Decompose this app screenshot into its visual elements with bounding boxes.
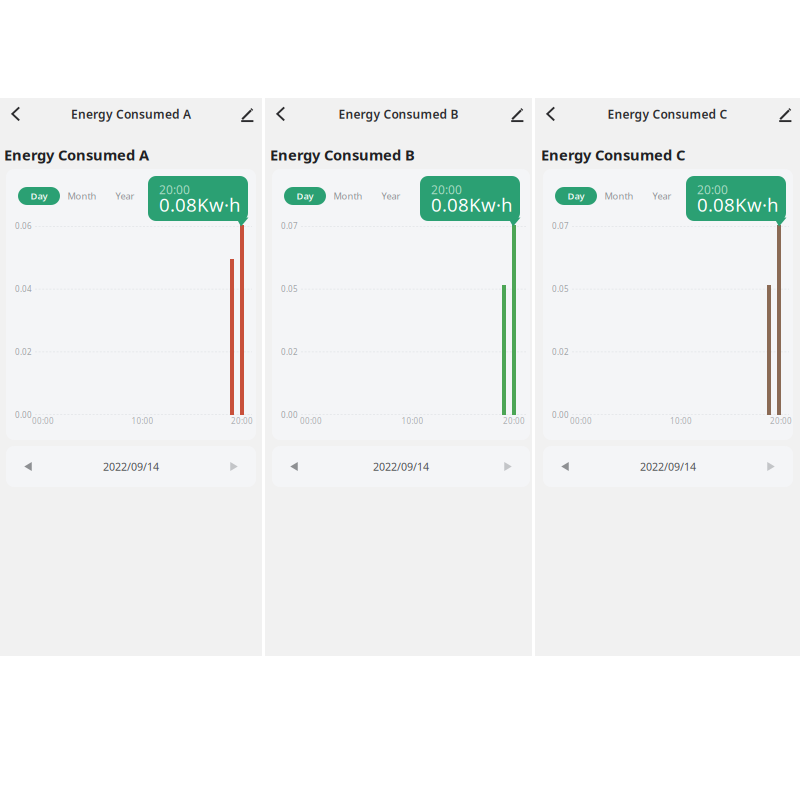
staticText: 0.00 bbox=[281, 410, 298, 420]
button[interactable]: Day bbox=[555, 187, 597, 205]
staticText: Month bbox=[67, 190, 96, 202]
button[interactable]: Edit bbox=[769, 101, 800, 127]
button[interactable]: Year bbox=[641, 187, 683, 205]
staticText: 0.07 bbox=[281, 221, 298, 231]
staticText: Day bbox=[30, 190, 47, 202]
staticText: 00:00 bbox=[570, 416, 592, 426]
staticText: 0.02 bbox=[15, 347, 32, 357]
staticText: 00:00 bbox=[300, 416, 322, 426]
staticText: 0.05 bbox=[552, 284, 569, 294]
button[interactable]: Next day bbox=[496, 446, 520, 487]
staticText: 0.08Kw·h bbox=[159, 192, 241, 217]
staticText: 0.00 bbox=[552, 410, 569, 420]
button[interactable]: Edit bbox=[501, 101, 532, 127]
staticText: 0.08Kw·h bbox=[697, 192, 779, 217]
staticText: 0.02 bbox=[281, 347, 298, 357]
staticText: Year bbox=[381, 190, 400, 202]
staticText: 20:00 bbox=[159, 181, 190, 197]
button[interactable]: Year bbox=[370, 187, 412, 205]
button[interactable]: Back bbox=[535, 100, 565, 127]
button[interactable]: Edit bbox=[231, 101, 262, 127]
staticText: 20:00 bbox=[431, 181, 462, 197]
button[interactable]: Previous day bbox=[553, 446, 577, 487]
staticText: 2022/09/14 bbox=[640, 459, 696, 474]
staticText: 20:00 bbox=[503, 416, 525, 426]
button[interactable]: Day bbox=[18, 187, 60, 205]
staticText: 0.08Kw·h bbox=[431, 192, 513, 217]
staticText: 0.06 bbox=[15, 221, 32, 231]
button[interactable]: Back bbox=[265, 100, 295, 127]
button[interactable]: Next day bbox=[759, 446, 783, 487]
staticText: Month bbox=[333, 190, 362, 202]
staticText: Year bbox=[115, 190, 134, 202]
button[interactable]: Month bbox=[326, 187, 370, 205]
staticText: 10:00 bbox=[670, 416, 692, 426]
button[interactable]: Previous day bbox=[16, 446, 40, 487]
staticText: 10:00 bbox=[401, 416, 423, 426]
staticText: 20:00 bbox=[770, 416, 792, 426]
staticText: 0.00 bbox=[15, 410, 32, 420]
staticText: 0.02 bbox=[552, 347, 569, 357]
staticText: Energy Consumed C bbox=[607, 106, 727, 122]
button[interactable]: Next day bbox=[222, 446, 246, 487]
staticText: 20:00 bbox=[697, 181, 728, 197]
staticText: 2022/09/14 bbox=[103, 459, 159, 474]
staticText: Month bbox=[604, 190, 633, 202]
staticText: Energy Consumed B bbox=[338, 106, 458, 122]
button[interactable]: Previous day bbox=[282, 446, 306, 487]
staticText: 0.05 bbox=[281, 284, 298, 294]
button[interactable]: Year bbox=[104, 187, 146, 205]
staticText: 0.04 bbox=[15, 284, 32, 294]
staticText: 00:00 bbox=[32, 416, 54, 426]
staticText: Energy Consumed A bbox=[71, 106, 191, 122]
staticText: Energy Consumed A bbox=[4, 145, 149, 164]
button[interactable]: Back bbox=[0, 100, 30, 127]
staticText: 0.07 bbox=[552, 221, 569, 231]
button[interactable]: Month bbox=[60, 187, 104, 205]
staticText: 10:00 bbox=[131, 416, 153, 426]
staticText: 2022/09/14 bbox=[373, 459, 429, 474]
staticText: Day bbox=[296, 190, 313, 202]
staticText: Day bbox=[567, 190, 584, 202]
staticText: Energy Consumed B bbox=[270, 145, 415, 164]
button[interactable]: Month bbox=[597, 187, 641, 205]
staticText: Energy Consumed C bbox=[541, 145, 685, 164]
staticText: Year bbox=[652, 190, 671, 202]
button[interactable]: Day bbox=[284, 187, 326, 205]
staticText: 20:00 bbox=[231, 416, 253, 426]
